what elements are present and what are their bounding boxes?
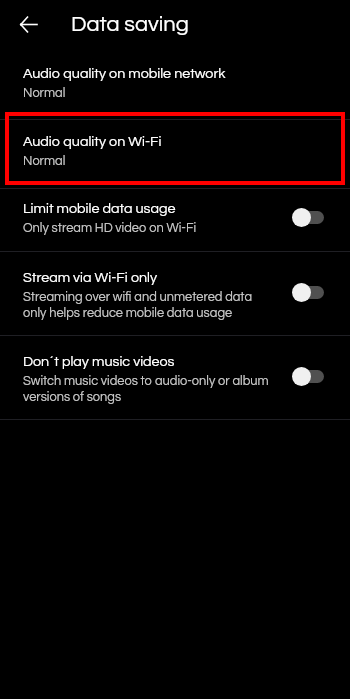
staticText: Limit mobile data usage xyxy=(23,201,176,216)
button[interactable]: Stream via Wi-Fi only xyxy=(0,252,350,336)
staticText: Audio quality on mobile network xyxy=(23,66,226,81)
staticText: Only stream HD video on Wi-Fi xyxy=(23,222,197,235)
button[interactable]: Back xyxy=(9,5,47,43)
staticText: Streaming over wifi and unmetered data o… xyxy=(23,291,253,320)
staticText: Normal xyxy=(23,155,66,168)
staticText: Don´t play music videos xyxy=(23,354,175,369)
staticText: Stream via Wi-Fi only xyxy=(23,270,158,285)
staticText: Audio quality on Wi-Fi xyxy=(23,134,162,149)
button[interactable]: Limit mobile data usage xyxy=(0,189,350,252)
button[interactable]: Toggle xyxy=(292,364,324,388)
staticText: Switch music videos to audio-only or alb… xyxy=(23,375,269,404)
button[interactable]: Audio quality on mobile network xyxy=(0,52,350,120)
button[interactable]: Audio quality on Wi-Fi xyxy=(0,120,350,189)
button[interactable]: Don´t play music videos xyxy=(0,336,350,420)
button[interactable]: Toggle xyxy=(292,205,324,229)
staticText: Normal xyxy=(23,87,66,100)
staticText: Data saving xyxy=(71,13,189,36)
button[interactable]: Toggle xyxy=(292,280,324,304)
